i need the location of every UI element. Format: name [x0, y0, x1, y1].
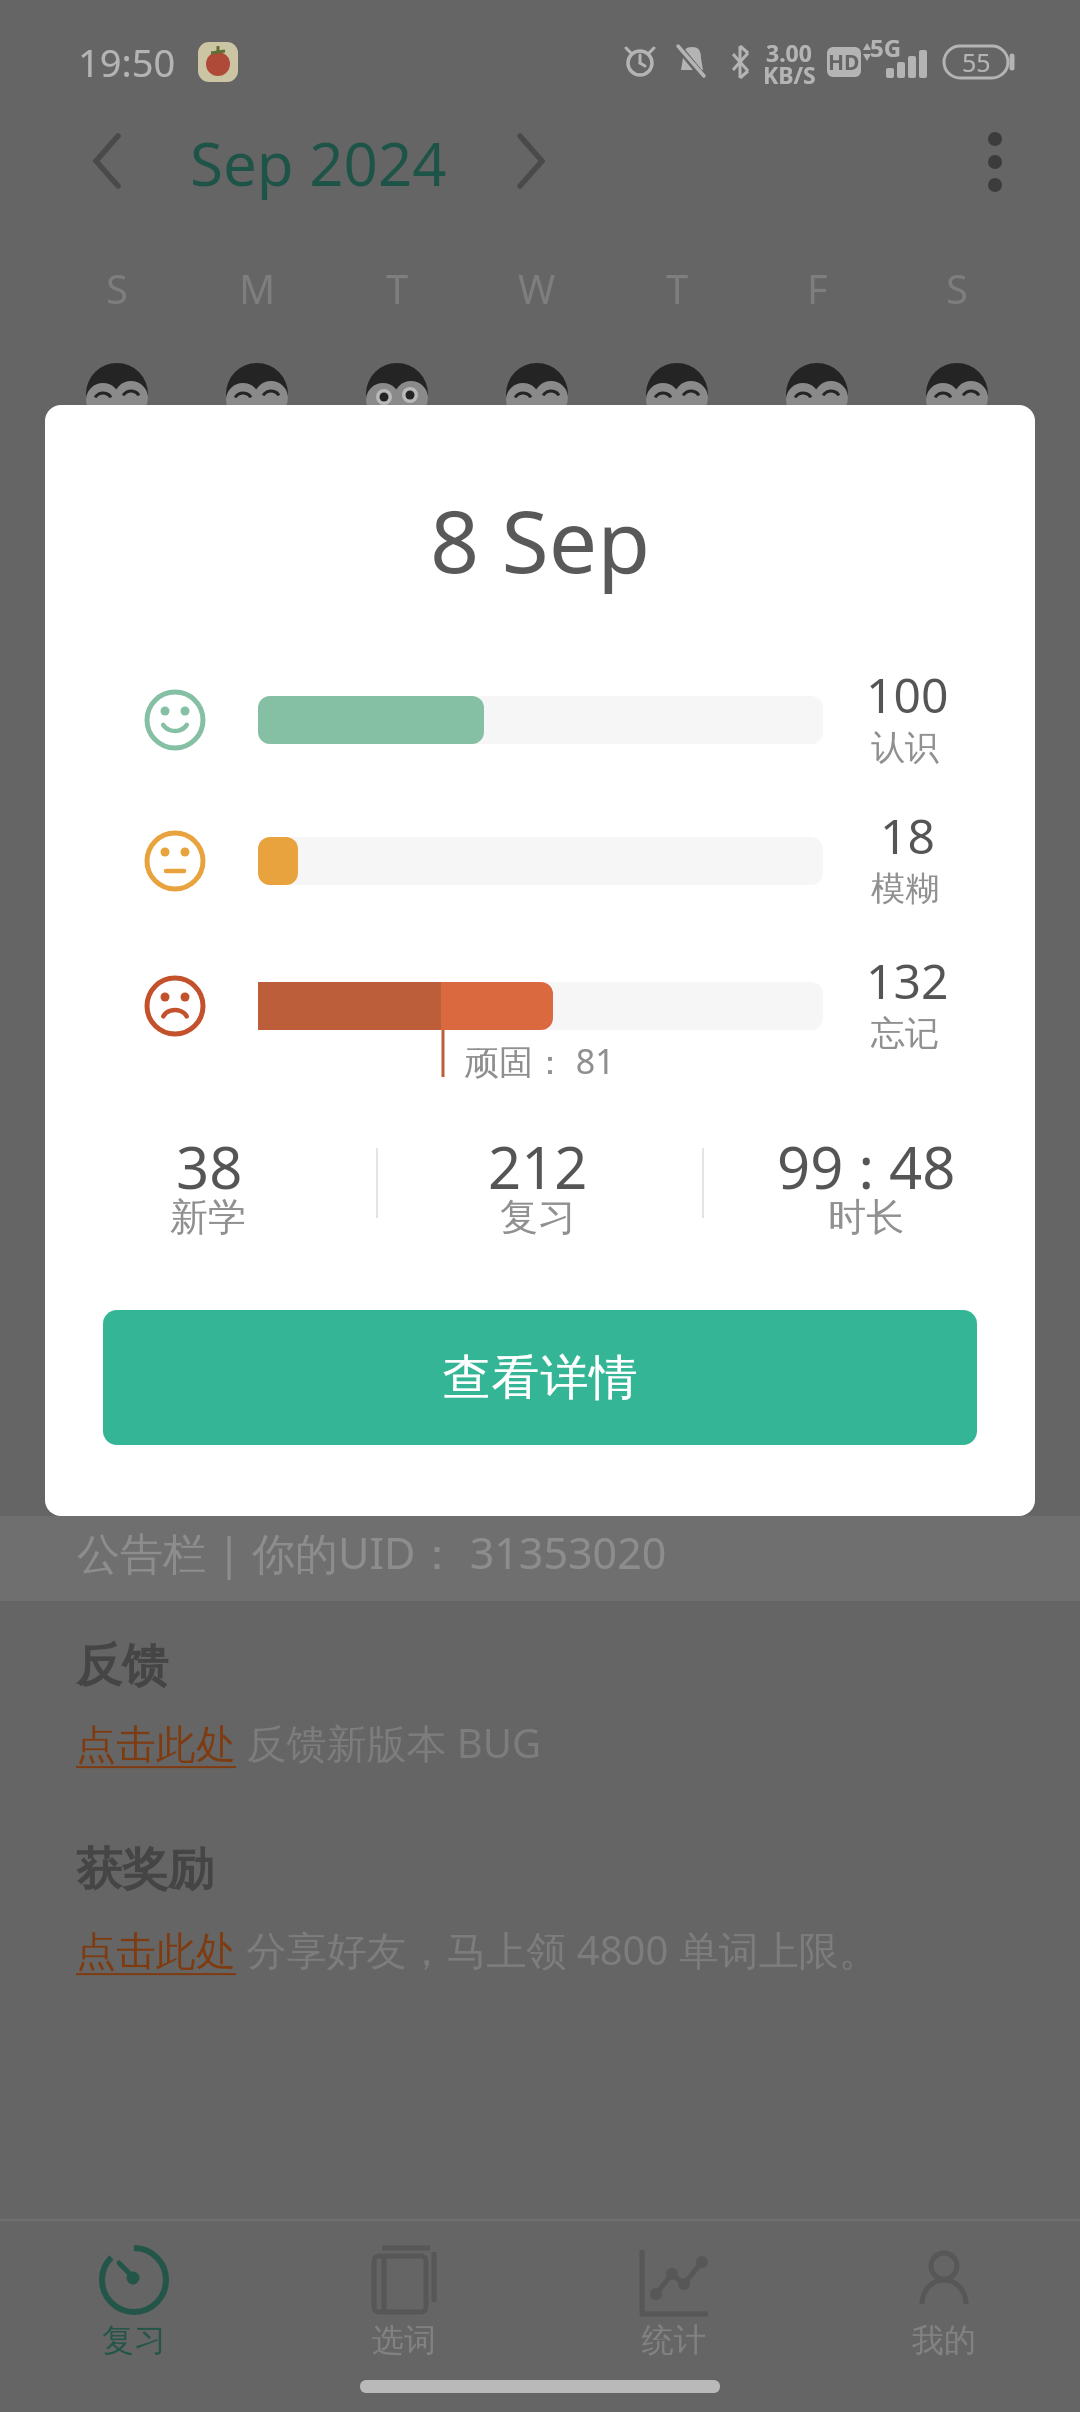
staticText: 时长 [828, 1193, 904, 1241]
button[interactable] [270, 2222, 540, 2382]
staticText: 3.00 [766, 37, 812, 68]
staticText: S [106, 261, 128, 315]
staticText: 100 [866, 662, 949, 727]
staticText: 复习 [500, 1193, 576, 1241]
button[interactable] [540, 2222, 810, 2382]
staticText: 反馈 [76, 1637, 168, 1695]
staticText: 复习 [102, 2320, 166, 2360]
staticText: 8 Sep [430, 481, 651, 598]
button[interactable] [960, 130, 1030, 200]
staticText: 查看详情 [442, 1348, 638, 1408]
staticText: 19:50 [78, 36, 176, 88]
staticText: 公告栏 | 你的UID： 31353020 [77, 1523, 667, 1582]
staticText: KB/S [763, 59, 816, 90]
button[interactable] [810, 2222, 1080, 2382]
staticText: 38 [176, 1127, 243, 1206]
staticText: Sep 2024 [190, 122, 447, 204]
staticText: 99 : 48 [777, 1127, 956, 1206]
button[interactable] [510, 130, 574, 194]
staticText: 统计 [642, 2320, 706, 2360]
button[interactable] [76, 1716, 232, 1768]
button[interactable] [0, 2222, 270, 2382]
staticText: F [807, 261, 828, 315]
staticText: 5G [870, 31, 902, 64]
staticText: 选词 [372, 2320, 436, 2360]
staticText: W [518, 261, 556, 315]
staticText: 212 [488, 1127, 588, 1206]
button[interactable] [75, 130, 139, 194]
staticText: 55 [962, 45, 991, 79]
staticText: 我的 [912, 2320, 976, 2360]
staticText: 认识 [871, 726, 939, 769]
staticText: 132 [866, 948, 949, 1013]
button[interactable]: 查看详情 [103, 1310, 977, 1445]
staticText: S [946, 261, 968, 315]
staticText: M [239, 261, 276, 315]
staticText: 18 [880, 803, 935, 868]
staticText: T [666, 261, 689, 315]
staticText: 顽固： 81 [465, 1038, 615, 1084]
staticText: 忘记 [871, 1012, 939, 1055]
staticText: 新学 [170, 1193, 246, 1241]
staticText: 点击此处 反馈新版本 BUG [76, 1715, 542, 1770]
staticText: T [386, 261, 409, 315]
staticText: 获奖励 [76, 1841, 214, 1899]
staticText: HD [828, 48, 860, 77]
staticText: 模糊 [871, 867, 939, 910]
staticText: 点击此处 分享好友，马上领 4800 单词上限。 [76, 1922, 879, 1977]
button[interactable] [76, 1923, 232, 1975]
